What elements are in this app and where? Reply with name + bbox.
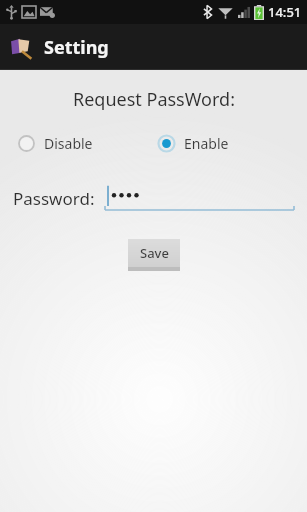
staticText: Save [140,244,169,262]
staticText: Enable [184,134,229,153]
button[interactable]: Disable [0,130,153,157]
staticText: 14:51 [268,3,302,21]
button[interactable]: Enable [153,130,307,157]
button[interactable]: Save [128,239,180,270]
button[interactable] [103,181,296,215]
staticText: Setting [44,35,109,60]
staticText: Request PassWord: [73,87,235,112]
staticText: Disable [44,134,93,153]
staticText: Password: [13,187,95,210]
